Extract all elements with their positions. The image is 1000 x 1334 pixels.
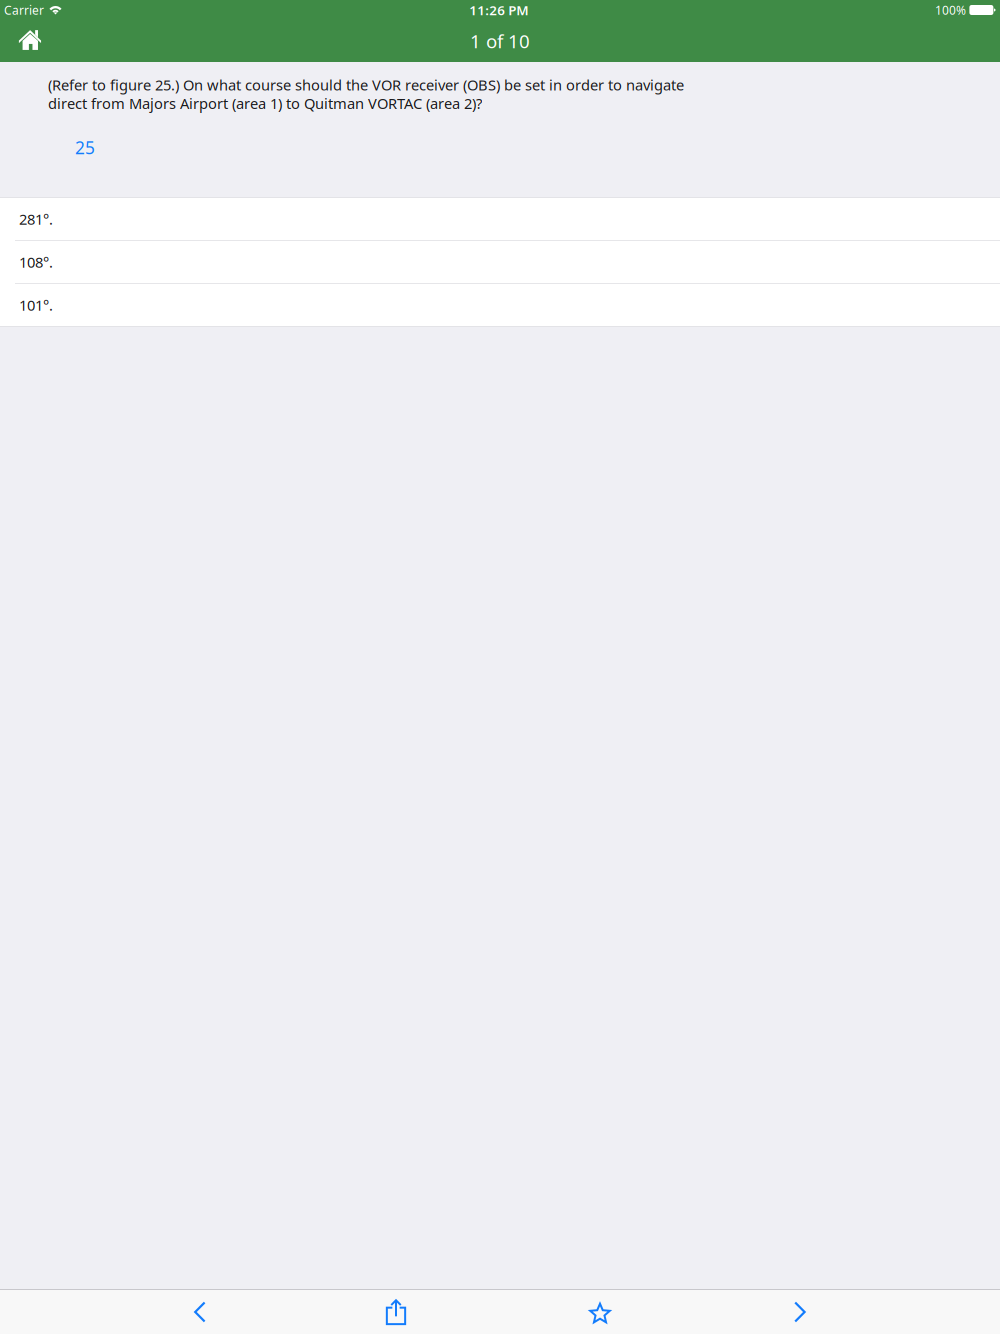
button[interactable]: Previous question <box>100 1290 300 1334</box>
button[interactable]: 108°. <box>0 241 1000 283</box>
button[interactable]: 25 <box>0 113 107 167</box>
staticText: (Refer to figure 25.) On what course sho… <box>48 75 684 113</box>
button[interactable]: Mark as favourite <box>500 1290 700 1334</box>
staticText: 25 <box>75 136 95 159</box>
staticText: 1 of 10 <box>470 29 530 53</box>
button[interactable]: Next question <box>700 1290 900 1334</box>
button[interactable]: 101°. <box>0 284 1000 326</box>
staticText: 101°. <box>19 295 53 315</box>
staticText: 281°. <box>19 209 53 229</box>
button[interactable]: Share <box>300 1290 500 1334</box>
button[interactable]: 281°. <box>0 198 1000 240</box>
staticText: 11:26 PM <box>469 1 528 19</box>
staticText: 100% <box>935 2 966 18</box>
button[interactable]: Home <box>0 20 58 62</box>
staticText: 108°. <box>19 252 53 272</box>
staticText: Carrier <box>4 2 44 18</box>
